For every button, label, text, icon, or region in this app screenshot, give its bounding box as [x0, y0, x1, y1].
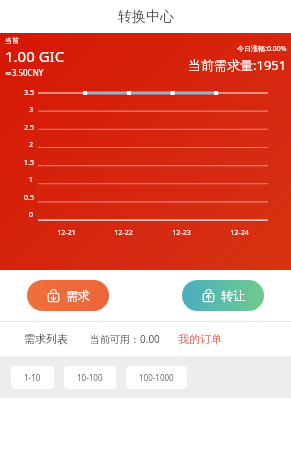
button[interactable]: 我的订单	[178, 332, 222, 346]
staticText: 12-22	[114, 228, 133, 238]
staticText: 12-24	[230, 228, 249, 238]
staticText: 当前可用：0.00	[90, 332, 160, 346]
staticText: 1	[29, 175, 34, 185]
button[interactable]: 需求	[27, 280, 109, 311]
button[interactable]: 转让	[182, 280, 264, 311]
staticText: 0	[29, 210, 34, 220]
staticText: ≈3.50CNY	[5, 67, 44, 78]
staticText: 100-1000	[139, 372, 174, 383]
button[interactable]: 10-100	[64, 366, 116, 389]
staticText: 1.00 GIC	[5, 46, 65, 66]
staticText: 2	[29, 140, 34, 150]
button[interactable]: 需求列表	[24, 332, 68, 346]
staticText: 12-23	[172, 228, 191, 238]
staticText: 12-21	[57, 228, 76, 238]
button[interactable]: 100-1000	[126, 366, 187, 389]
staticText: 0.5	[24, 193, 34, 203]
staticText: 当前	[5, 36, 19, 45]
staticText: 3	[29, 105, 34, 115]
staticText: 需求	[66, 288, 90, 303]
staticText: 转换中心	[118, 8, 174, 26]
staticText: 3.5	[24, 88, 34, 98]
staticText: 2.5	[24, 123, 34, 133]
staticText: 转让	[221, 288, 245, 303]
staticText: 当前需求量:1951	[188, 56, 287, 74]
staticText: 1.5	[24, 158, 34, 168]
staticText: 1-10	[24, 372, 41, 383]
staticText: 10-100	[77, 372, 103, 383]
button[interactable]: 1-10	[11, 366, 54, 389]
staticText: 今日涨幅:0.00%	[237, 44, 287, 54]
